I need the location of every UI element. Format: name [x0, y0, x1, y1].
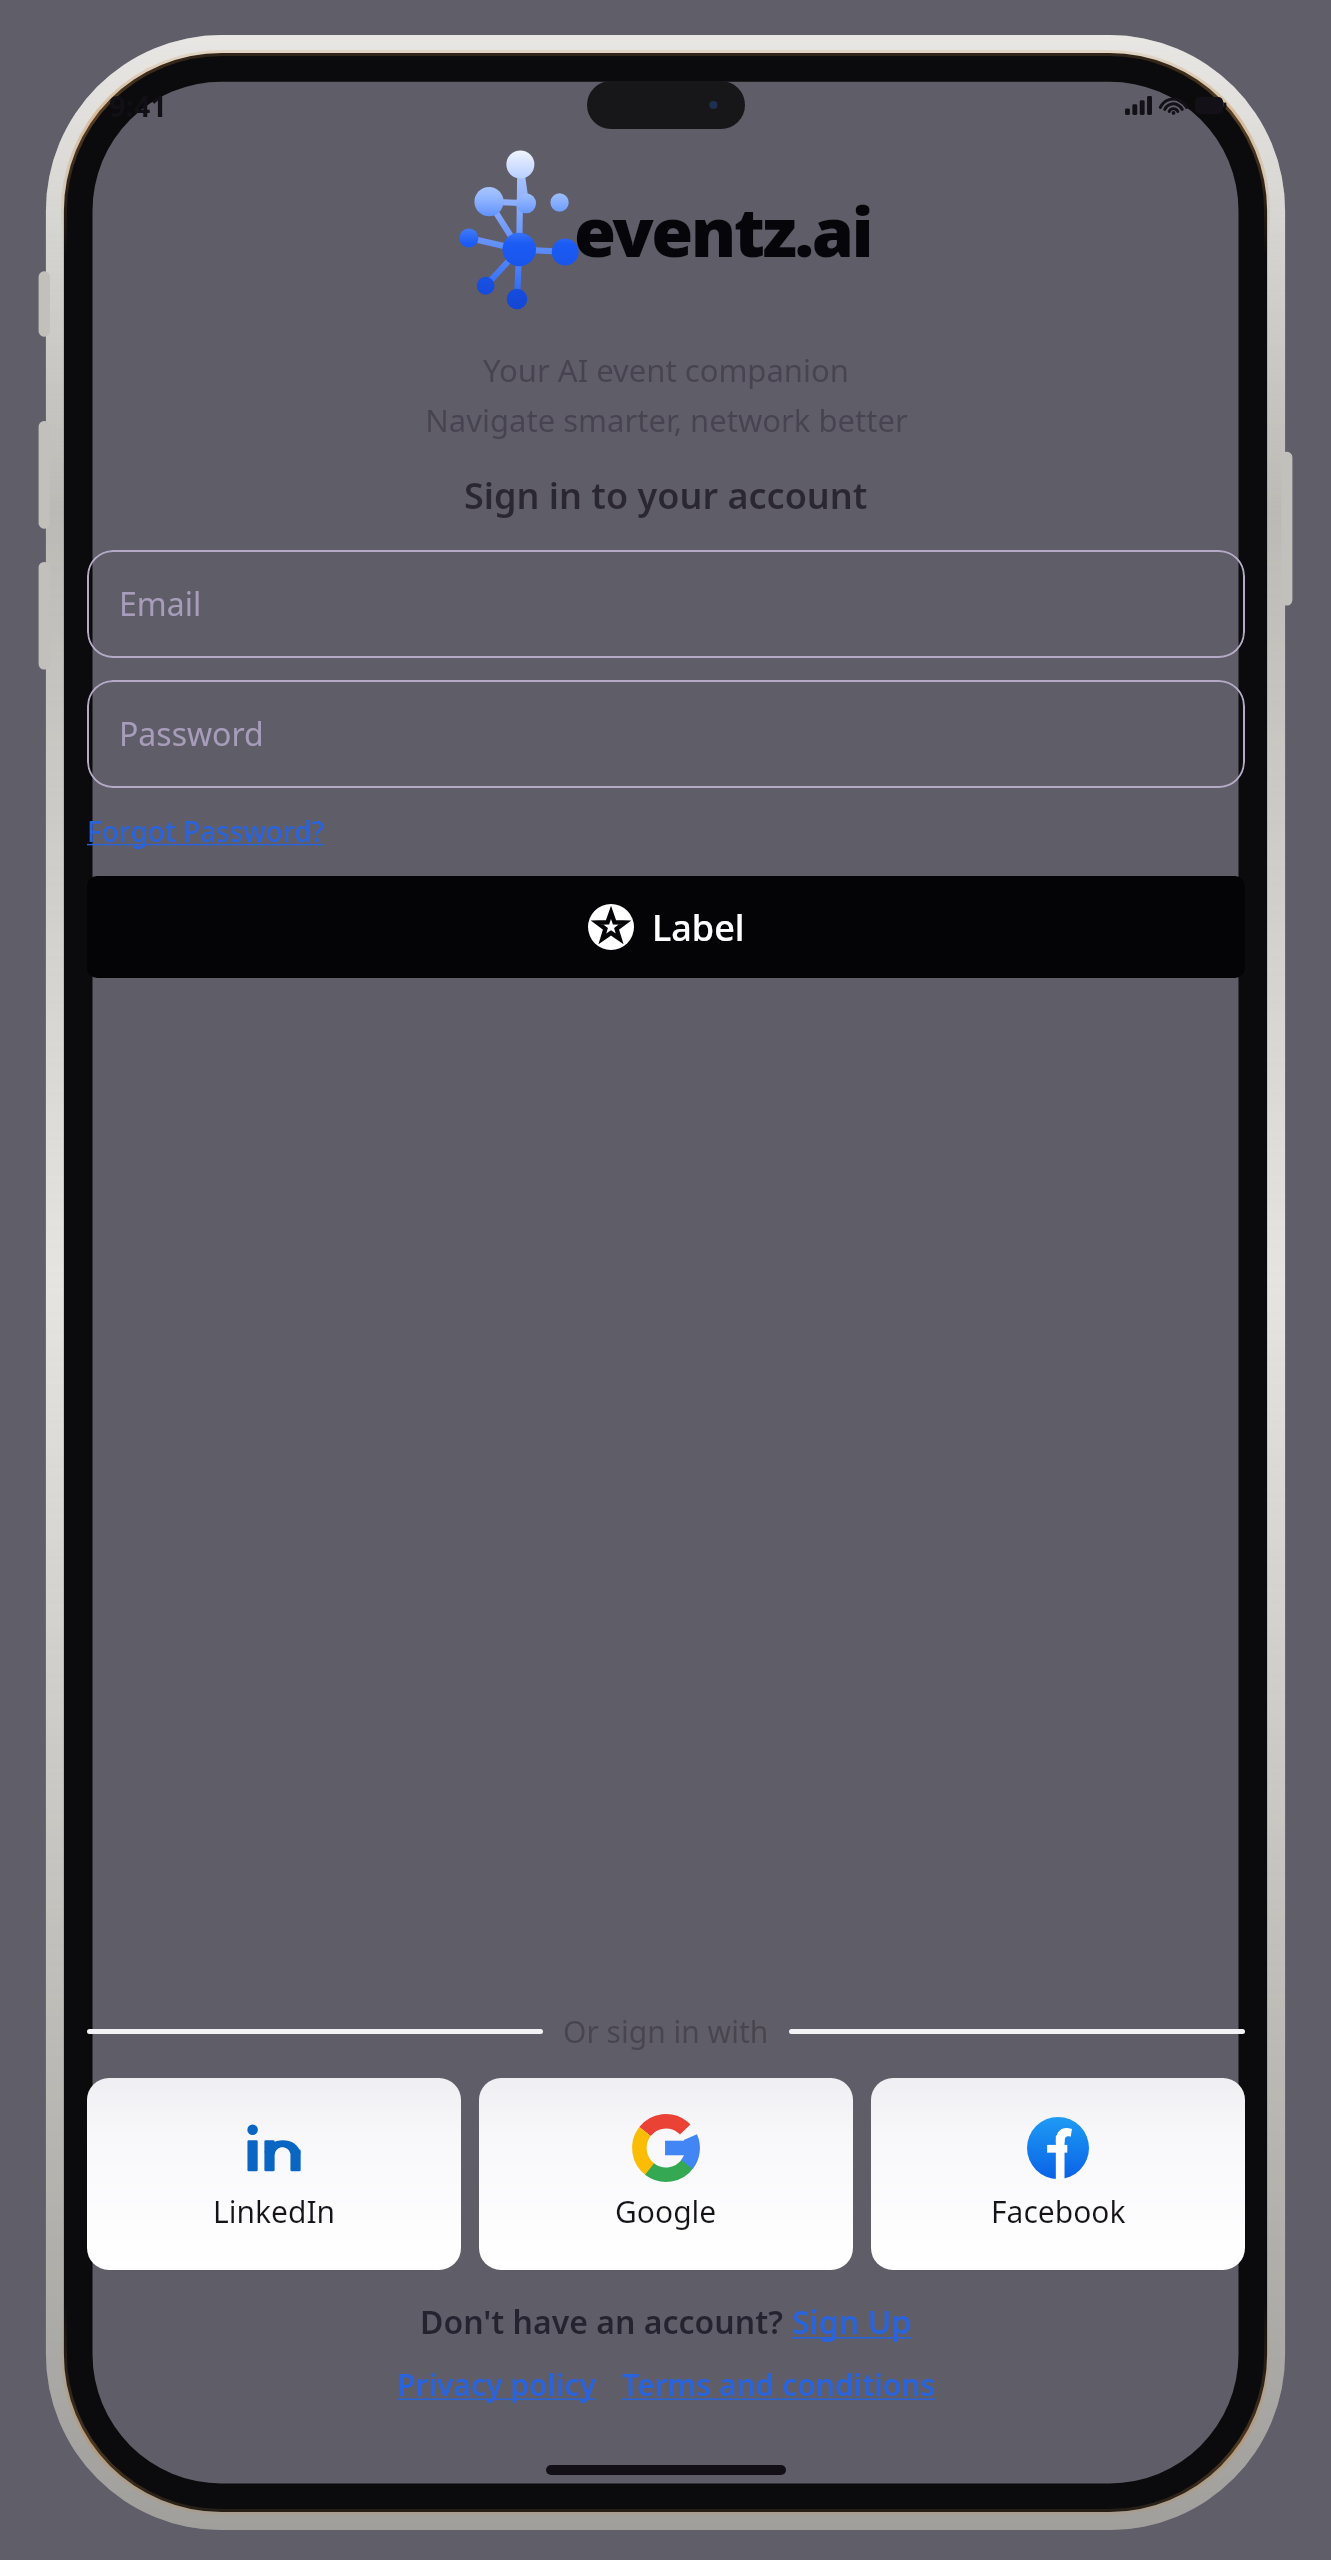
button[interactable]: Email [87, 550, 1245, 658]
button[interactable]: Forgot Password? [87, 810, 325, 852]
staticText: Sign Up [792, 2300, 912, 2344]
staticText: Google [615, 2191, 717, 2232]
button[interactable]: Facebook [871, 2078, 1245, 2270]
staticText: Your AI event companion [483, 349, 849, 391]
button[interactable]: Google [479, 2078, 853, 2270]
button[interactable]: Privacy policy [397, 2364, 596, 2405]
button[interactable]: Terms and conditions [622, 2364, 936, 2405]
button[interactable]: Password [87, 680, 1245, 788]
staticText: Don't have an account? [420, 2300, 792, 2344]
staticText: Sign in to your account [464, 471, 868, 520]
staticText: eventz.ai [574, 184, 872, 277]
staticText: Privacy policy [397, 2364, 596, 2405]
staticText: Or sign in with [563, 2011, 769, 2052]
button[interactable]: LinkedIn [87, 2078, 461, 2270]
staticText: Email [119, 582, 202, 626]
staticText: LinkedIn [213, 2191, 336, 2232]
staticText: Label [652, 903, 745, 952]
button[interactable]: Label [87, 876, 1245, 978]
staticText: Navigate smarter, network better [425, 399, 908, 441]
staticText: Forgot Password? [87, 812, 325, 850]
staticText: 9:41 [109, 86, 167, 125]
button[interactable]: Sign Up [792, 2300, 912, 2344]
staticText: Password [119, 712, 264, 756]
staticText: Facebook [991, 2191, 1126, 2232]
staticText: Terms and conditions [622, 2364, 936, 2405]
